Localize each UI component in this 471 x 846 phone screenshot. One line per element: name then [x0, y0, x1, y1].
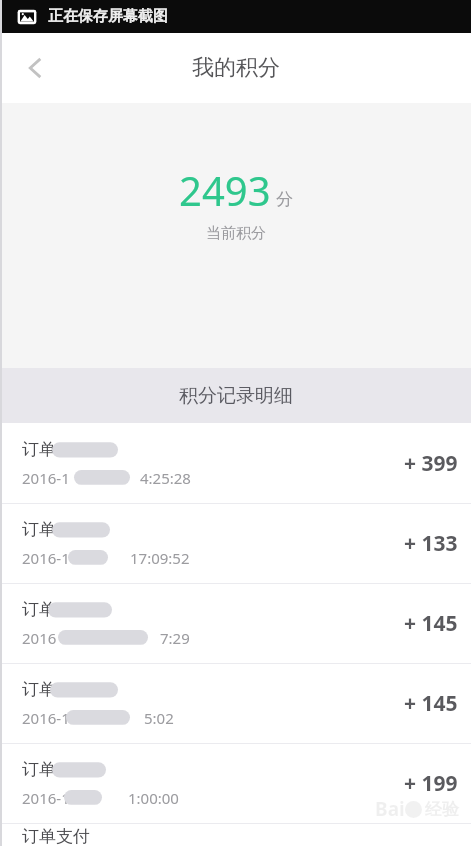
staticText: 正在保存屏幕截图 — [48, 7, 168, 26]
staticText: 2016 — [22, 628, 57, 648]
staticText: 4:25:28 — [140, 468, 191, 488]
staticText: 2016-1 — [22, 548, 70, 568]
staticText: 分 — [276, 189, 293, 210]
button[interactable]: 订单 — [0, 504, 471, 583]
staticText: + 145 — [404, 609, 458, 638]
staticText: + 145 — [404, 689, 458, 718]
staticText: 积分记录明细 — [179, 384, 293, 408]
staticText: 当前积分 — [206, 224, 266, 243]
staticText: 17:09:52 — [130, 548, 190, 568]
button[interactable]: 订单 — [0, 423, 471, 503]
staticText: 我的积分 — [192, 54, 280, 82]
staticText: 2016-1 — [22, 708, 70, 728]
staticText: 7:29 — [160, 628, 190, 648]
button[interactable]: 订单 — [0, 584, 471, 663]
button[interactable]: 订单 — [0, 664, 471, 743]
staticText: 订单 — [22, 679, 56, 700]
button[interactable]: Back — [12, 44, 60, 92]
staticText: 2016-1 — [22, 468, 70, 488]
staticText: + 399 — [404, 449, 458, 478]
staticText: + 199 — [404, 769, 458, 798]
staticText: 订单 — [22, 519, 56, 540]
staticText: 订单 — [22, 439, 56, 460]
staticText: 经验 — [425, 799, 459, 820]
staticText: 2016-1 — [22, 788, 70, 808]
staticText: 5:02 — [144, 708, 174, 728]
button[interactable]: 订单支付 — [0, 824, 471, 846]
staticText: 1:00:00 — [128, 788, 179, 808]
staticText: 订单 — [22, 759, 56, 780]
button[interactable]: 订单 — [0, 744, 471, 823]
staticText: + 133 — [404, 529, 458, 558]
staticText: 订单 — [22, 599, 56, 620]
staticText: Bai — [375, 796, 405, 822]
staticText: 2493 — [179, 163, 271, 217]
staticText: 订单支付 — [22, 826, 90, 846]
